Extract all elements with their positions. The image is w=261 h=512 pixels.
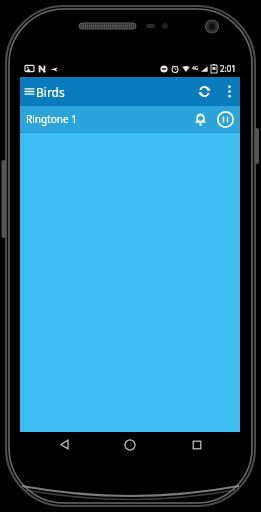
staticText: Birds — [36, 84, 65, 100]
staticText: 4G — [192, 65, 199, 72]
button[interactable]: Set as ringtone — [188, 106, 212, 132]
button[interactable]: Back — [41, 432, 87, 457]
button[interactable]: Recents — [174, 432, 220, 457]
button[interactable]: Ringtone 1 — [20, 106, 240, 132]
staticText: 2:01 — [220, 63, 236, 74]
button[interactable]: Pause — [212, 106, 238, 132]
button[interactable]: Open navigation menu — [20, 77, 36, 106]
staticText: Ringtone 1 — [26, 112, 77, 126]
button[interactable]: Home — [107, 432, 153, 457]
button[interactable]: More options — [218, 77, 240, 106]
button[interactable]: Refresh — [190, 77, 218, 106]
